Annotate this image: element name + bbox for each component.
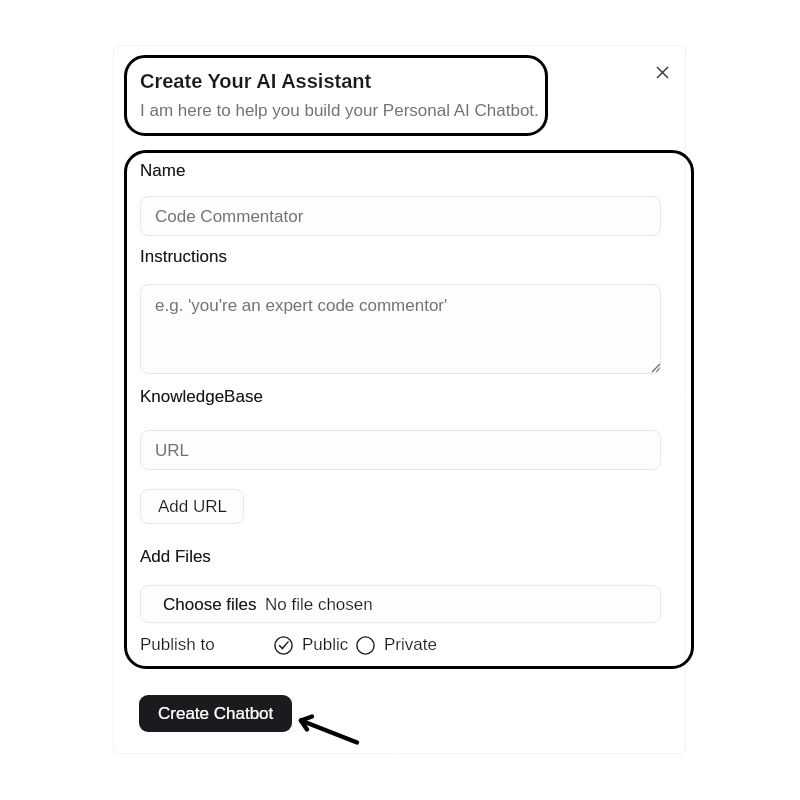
staticText: Instructions <box>140 247 227 266</box>
staticText: e.g. 'you're an expert code commentor' <box>155 296 448 315</box>
staticText: KnowledgeBase <box>140 387 263 406</box>
button[interactable]: e.g. 'you're an expert code commentor' <box>140 284 661 374</box>
button[interactable]: Choose files <box>140 585 661 623</box>
staticText: Code Commentator <box>155 207 304 226</box>
staticText: Private <box>384 635 437 654</box>
button[interactable]: URL <box>140 430 661 470</box>
button[interactable]: Close <box>647 57 677 87</box>
staticText: Name <box>140 161 186 180</box>
staticText: Add Files <box>140 547 211 566</box>
staticText: Instructions <box>140 247 227 266</box>
staticText: URL <box>155 441 190 460</box>
staticText: Name <box>140 161 186 180</box>
staticText: Publish to <box>140 635 215 654</box>
staticText: Choose files <box>163 595 257 614</box>
button[interactable]: Add URL <box>140 489 244 524</box>
staticText: Add Files <box>140 547 211 566</box>
staticText: Create Chatbot <box>158 704 274 723</box>
button[interactable]: Create Chatbot <box>139 695 292 732</box>
button[interactable]: Code Commentator <box>140 196 661 236</box>
staticText: Public <box>302 635 349 654</box>
button[interactable]: Private <box>354 632 438 658</box>
button[interactable]: Public <box>272 632 350 658</box>
staticText: Choose files <box>163 595 257 614</box>
staticText: No file chosen <box>265 595 373 614</box>
staticText: KnowledgeBase <box>140 387 263 406</box>
staticText: I am here to help you build your Persona… <box>140 101 539 120</box>
staticText: Add URL <box>158 497 227 516</box>
staticText: Create Your AI Assistant <box>140 70 372 92</box>
